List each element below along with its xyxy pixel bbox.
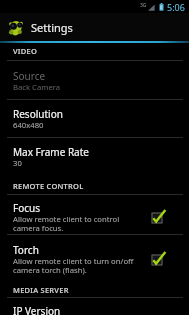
staticText: Allow remote client to control camera fo… [13, 214, 120, 233]
staticText: MEDIA SERVER [13, 285, 69, 295]
staticText: Resolution [13, 107, 63, 121]
button[interactable]: Source [0, 63, 189, 93]
button[interactable]: Resolution [0, 101, 189, 131]
staticText: 640x480 [13, 120, 44, 130]
button[interactable]: App icon [0, 13, 189, 41]
button[interactable]: Torch [0, 237, 189, 276]
button[interactable]: Focus [0, 195, 189, 234]
button[interactable]: Toggle [146, 249, 168, 271]
staticText: Source [13, 69, 46, 83]
staticText: Max Frame Rate [13, 145, 89, 159]
other: App icon [8, 19, 24, 36]
button[interactable]: Toggle [146, 207, 168, 229]
staticText: IP Version [13, 304, 61, 315]
button[interactable]: Max Frame Rate [0, 139, 189, 169]
staticText: VIDEO [13, 46, 38, 56]
staticText: Focus [13, 201, 41, 215]
staticText: Allow remote client to turn on/off camer… [13, 256, 134, 275]
button[interactable]: IP Version [0, 298, 189, 315]
staticText: 30 [13, 158, 22, 168]
staticText: Torch [13, 243, 39, 257]
staticText: Back Camera [13, 82, 61, 92]
staticText: Settings [31, 20, 73, 35]
staticText: REMOTE CONTROL [13, 181, 84, 191]
staticText: 3G [140, 2, 147, 9]
staticText: 5:06 [167, 1, 185, 13]
